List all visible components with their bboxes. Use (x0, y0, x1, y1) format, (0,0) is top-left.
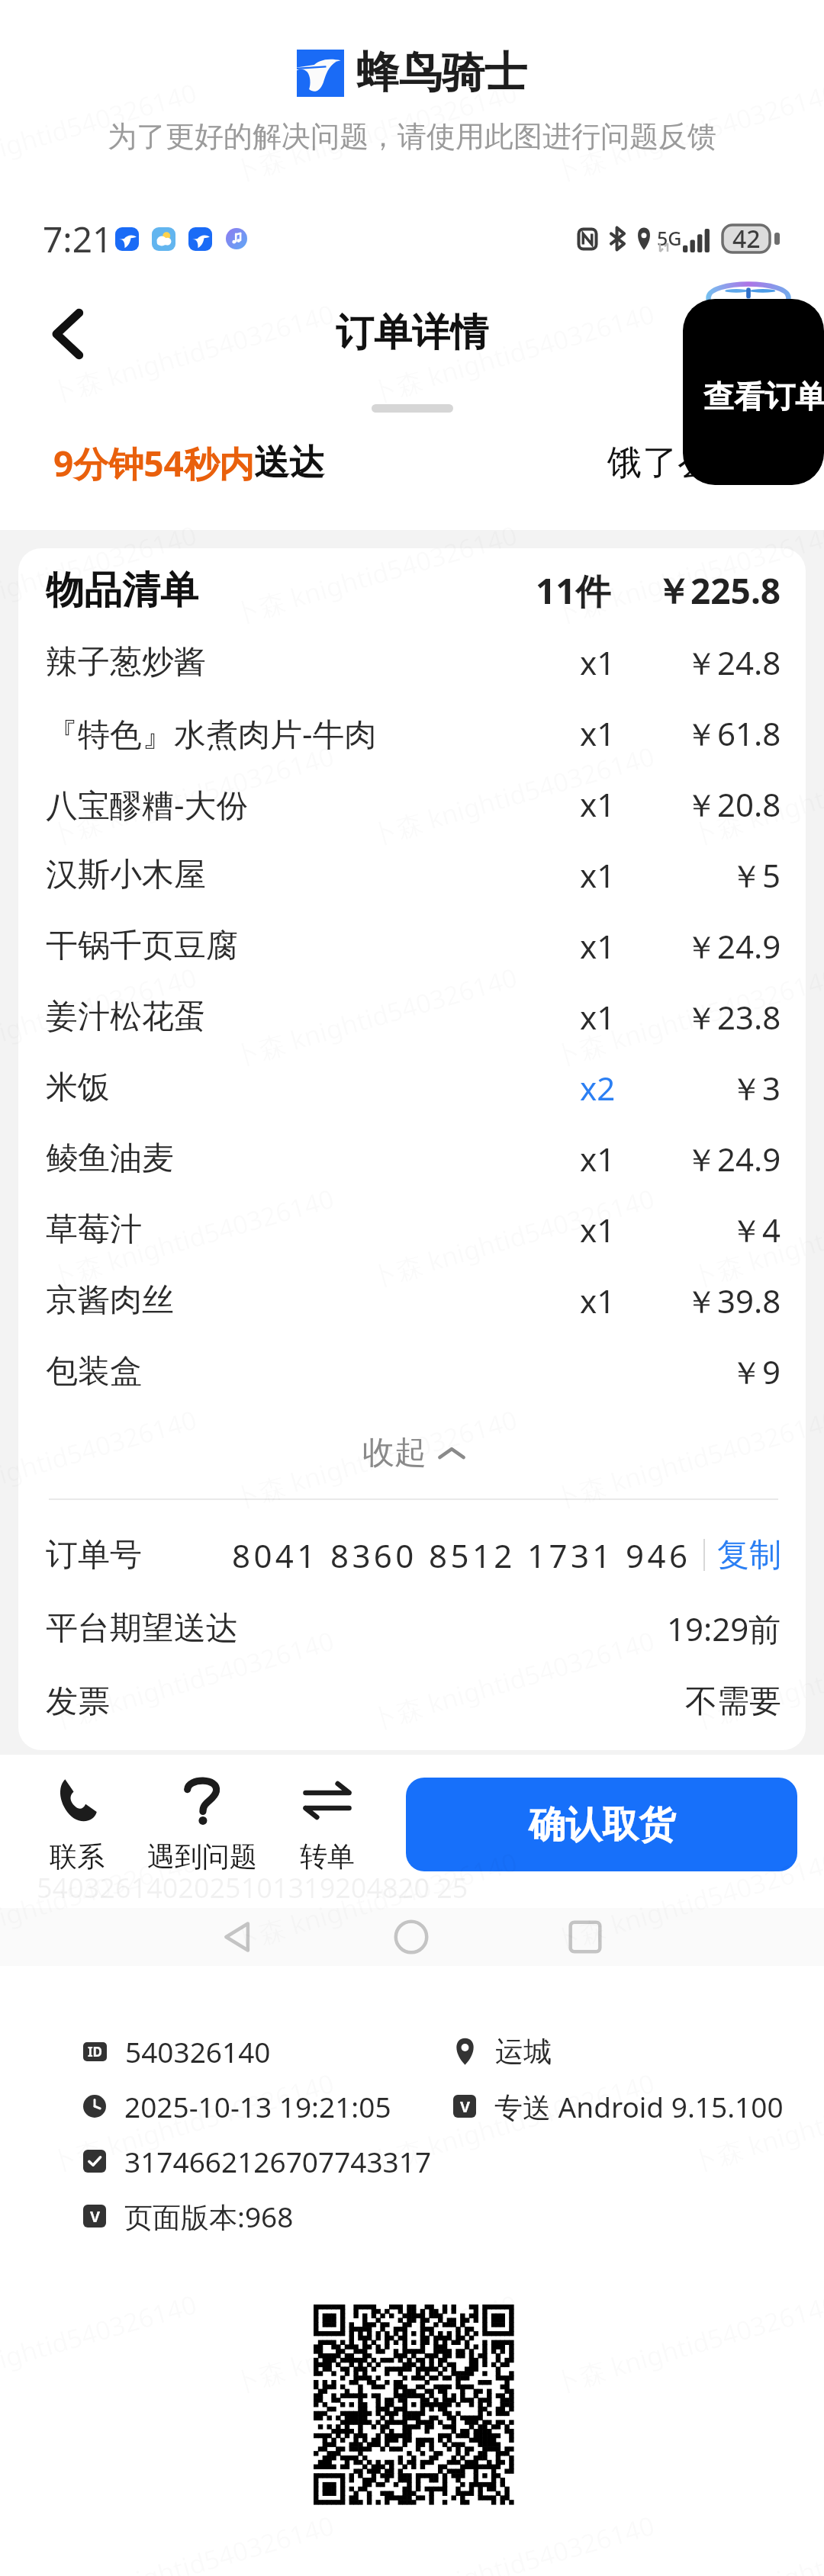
staticText: 卜森 knightid540326140 (47, 738, 338, 853)
staticText: 发票 (46, 1681, 110, 1722)
staticText: 8041 8360 8512 1731 946 (232, 1534, 691, 1577)
staticText: 卜森 knightid540326140 (47, 1180, 338, 1295)
staticText: 姜汁松花蛋 (46, 997, 206, 1037)
staticText: 平台期望送达 (46, 1608, 238, 1649)
staticText: 订单详情 (336, 309, 488, 357)
staticText: 页面版本:968 (124, 2197, 294, 2236)
staticText: 『特色』水煮肉片-牛肉 (46, 711, 377, 755)
staticText: 复制 (717, 1535, 781, 1575)
staticText: x1 (580, 1208, 616, 1251)
staticText: 包装盒 (46, 1351, 142, 1392)
staticText: 八宝醪糟-大份 (46, 782, 249, 826)
staticText: 订单号 (46, 1535, 142, 1575)
staticText: 收起 (362, 1433, 426, 1473)
staticText: 卜森 knightid540326140 (0, 959, 201, 1074)
staticText: 卜森 knightid540326140 (230, 1402, 521, 1516)
staticText: 卜森 knightid540326140 (550, 1402, 824, 1516)
staticText: 米饭 (46, 1068, 110, 1108)
staticText: ￥4 (730, 1208, 781, 1251)
button[interactable]: 收起 (46, 1407, 781, 1498)
staticText: 查看订单 (703, 377, 824, 416)
button[interactable]: 主页 (384, 1910, 439, 1964)
staticText: 蜂鸟骑士 (356, 46, 527, 100)
staticText: 7:21 (43, 215, 113, 263)
staticText: ID (88, 2043, 103, 2060)
staticText: 鲮鱼油麦 (46, 1139, 174, 1179)
button[interactable]: 复制 (717, 1535, 781, 1575)
staticText: 卜森 knightid540326140 (47, 2065, 338, 2180)
staticText: ￥24.8 (685, 641, 781, 684)
staticText: 卜森 knightid540326140 (367, 2065, 658, 2180)
staticText: 卜森 knightid540326140 (47, 1623, 338, 1737)
staticText: 卜森 knightid540326140 (550, 1844, 824, 1958)
staticText: x1 (580, 782, 616, 826)
staticText: 物品清单 (46, 567, 198, 615)
button[interactable]: 查看订单 (683, 299, 824, 485)
staticText: ￥24.9 (685, 924, 781, 968)
staticText: 卜森 knightid540326140 (688, 2065, 824, 2180)
staticText: ￥61.8 (685, 711, 781, 755)
staticText: 11件 (536, 567, 611, 615)
staticText: 草莓汁 (46, 1209, 142, 1250)
button[interactable]: 转单 (300, 1775, 355, 1874)
button[interactable]: 联系 (50, 1775, 105, 1874)
staticText: ￥3 (730, 1066, 781, 1110)
button[interactable]: 返回 (46, 309, 89, 359)
staticText: 5403261402025101319204820 25 (37, 1869, 468, 1906)
staticText: 2025-10-13 19:21:05 (124, 2087, 391, 2125)
staticText: 为了更好的解决问题，请使用此图进行问题反馈 (108, 118, 716, 155)
staticText: V (460, 2096, 470, 2117)
staticText: 卜森 knightid540326140 (230, 75, 521, 189)
staticText: x1 (580, 995, 616, 1039)
staticText: 确认取货 (529, 1802, 675, 1848)
staticText: ￥20.8 (685, 782, 781, 826)
staticText: 运城 (495, 2034, 552, 2070)
staticText: ￥225.8 (655, 567, 781, 615)
staticText: 卜森 knightid540326140 (0, 517, 201, 631)
staticText: 干锅千页豆腐 (46, 926, 238, 966)
button[interactable]: 最近任务 (558, 1910, 613, 1964)
staticText: 卜森 knightid540326140 (367, 296, 658, 410)
staticText: ￥24.9 (685, 1137, 781, 1180)
staticText: 3174662126707743317 (124, 2142, 432, 2180)
staticText: x1 (580, 1279, 616, 1322)
staticText: 卜森 knightid540326140 (230, 2286, 521, 2401)
staticText: 不需要 (685, 1681, 781, 1722)
staticText: V (90, 2206, 100, 2227)
staticText: 卜森 knightid540326140 (367, 738, 658, 853)
staticText: 京酱肉丝 (46, 1280, 174, 1321)
staticText: 卜森 knightid540326140 (230, 517, 521, 631)
staticText: 卜森 knightid540326140 (0, 75, 201, 189)
button[interactable]: 返回 (211, 1910, 266, 1964)
staticText: 转单 (300, 1839, 355, 1874)
staticText: 专送 Android 9.15.100 (494, 2087, 784, 2126)
staticText: 卜森 knightid540326140 (367, 1180, 658, 1295)
staticText: 辣子葱炒酱 (46, 642, 206, 683)
staticText: 9分钟54秒内 (53, 439, 254, 487)
staticText: x1 (580, 853, 616, 897)
staticText: 卜森 knightid540326140 (550, 959, 824, 1074)
staticText: ￥5 (730, 853, 781, 897)
staticText: 汉斯小木屋 (46, 855, 206, 895)
staticText: x1 (580, 711, 616, 755)
button[interactable]: 确认取货 (406, 1778, 797, 1871)
staticText: 19:29前 (667, 1607, 781, 1650)
staticText: 饿了么 (607, 441, 713, 485)
staticText: 卜森 knightid540326140 (550, 517, 824, 631)
staticText: 540326140 (125, 2032, 271, 2070)
staticText: x1 (580, 1137, 616, 1180)
button[interactable]: 遇到问题 (147, 1775, 257, 1874)
staticText: x1 (580, 924, 616, 968)
staticText: ￥9 (730, 1350, 781, 1393)
staticText: 42 (732, 222, 761, 255)
staticText: 卜森 knightid540326140 (688, 1623, 824, 1737)
staticText: ￥23.8 (685, 995, 781, 1039)
staticText: 5G (657, 225, 682, 251)
